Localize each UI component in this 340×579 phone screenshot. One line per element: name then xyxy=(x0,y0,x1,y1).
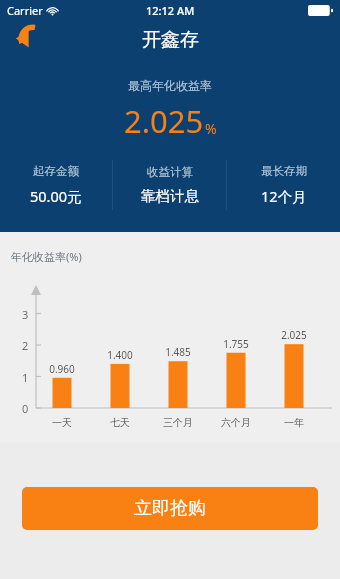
staticText: 1.485 xyxy=(159,345,197,359)
staticText: 最长存期 xyxy=(261,164,307,178)
staticText: 起存金额 xyxy=(33,164,79,178)
button[interactable]: 收益计算 xyxy=(113,158,226,212)
staticText: 六个月 xyxy=(211,416,261,429)
staticText: Carrier xyxy=(7,3,43,18)
staticText: 开鑫存 xyxy=(142,28,199,52)
staticText: 2.025 xyxy=(124,100,204,142)
staticText: 收益计算 xyxy=(147,165,193,179)
staticText: 1.755 xyxy=(217,337,255,351)
staticText: % xyxy=(205,119,217,138)
staticText: 七天 xyxy=(95,416,145,429)
staticText: 最高年化收益率 xyxy=(0,78,340,93)
staticText: 1.400 xyxy=(101,348,139,362)
staticText: 一年 xyxy=(269,416,319,429)
staticText: 0.960 xyxy=(43,362,81,376)
button[interactable]: 立即抢购 xyxy=(22,487,318,530)
button[interactable]: 起存金额 xyxy=(0,158,112,212)
staticText: 12个月 xyxy=(261,186,307,206)
staticText: 50.00元 xyxy=(30,186,82,206)
staticText: 1 xyxy=(22,370,29,385)
staticText: 立即抢购 xyxy=(134,497,206,520)
staticText: 靠档计息 xyxy=(141,187,199,205)
staticText: 2.025 xyxy=(275,328,313,342)
staticText: 2 xyxy=(22,338,29,353)
staticText: 年化收益率(%) xyxy=(11,249,82,264)
staticText: 一天 xyxy=(37,416,87,429)
staticText: 12:12 AM xyxy=(146,3,195,18)
staticText: 三个月 xyxy=(153,416,203,429)
button[interactable]: 最长存期 xyxy=(227,158,340,212)
button[interactable]: Back xyxy=(9,22,51,58)
staticText: 3 xyxy=(22,307,29,322)
staticText: 0 xyxy=(22,401,29,416)
